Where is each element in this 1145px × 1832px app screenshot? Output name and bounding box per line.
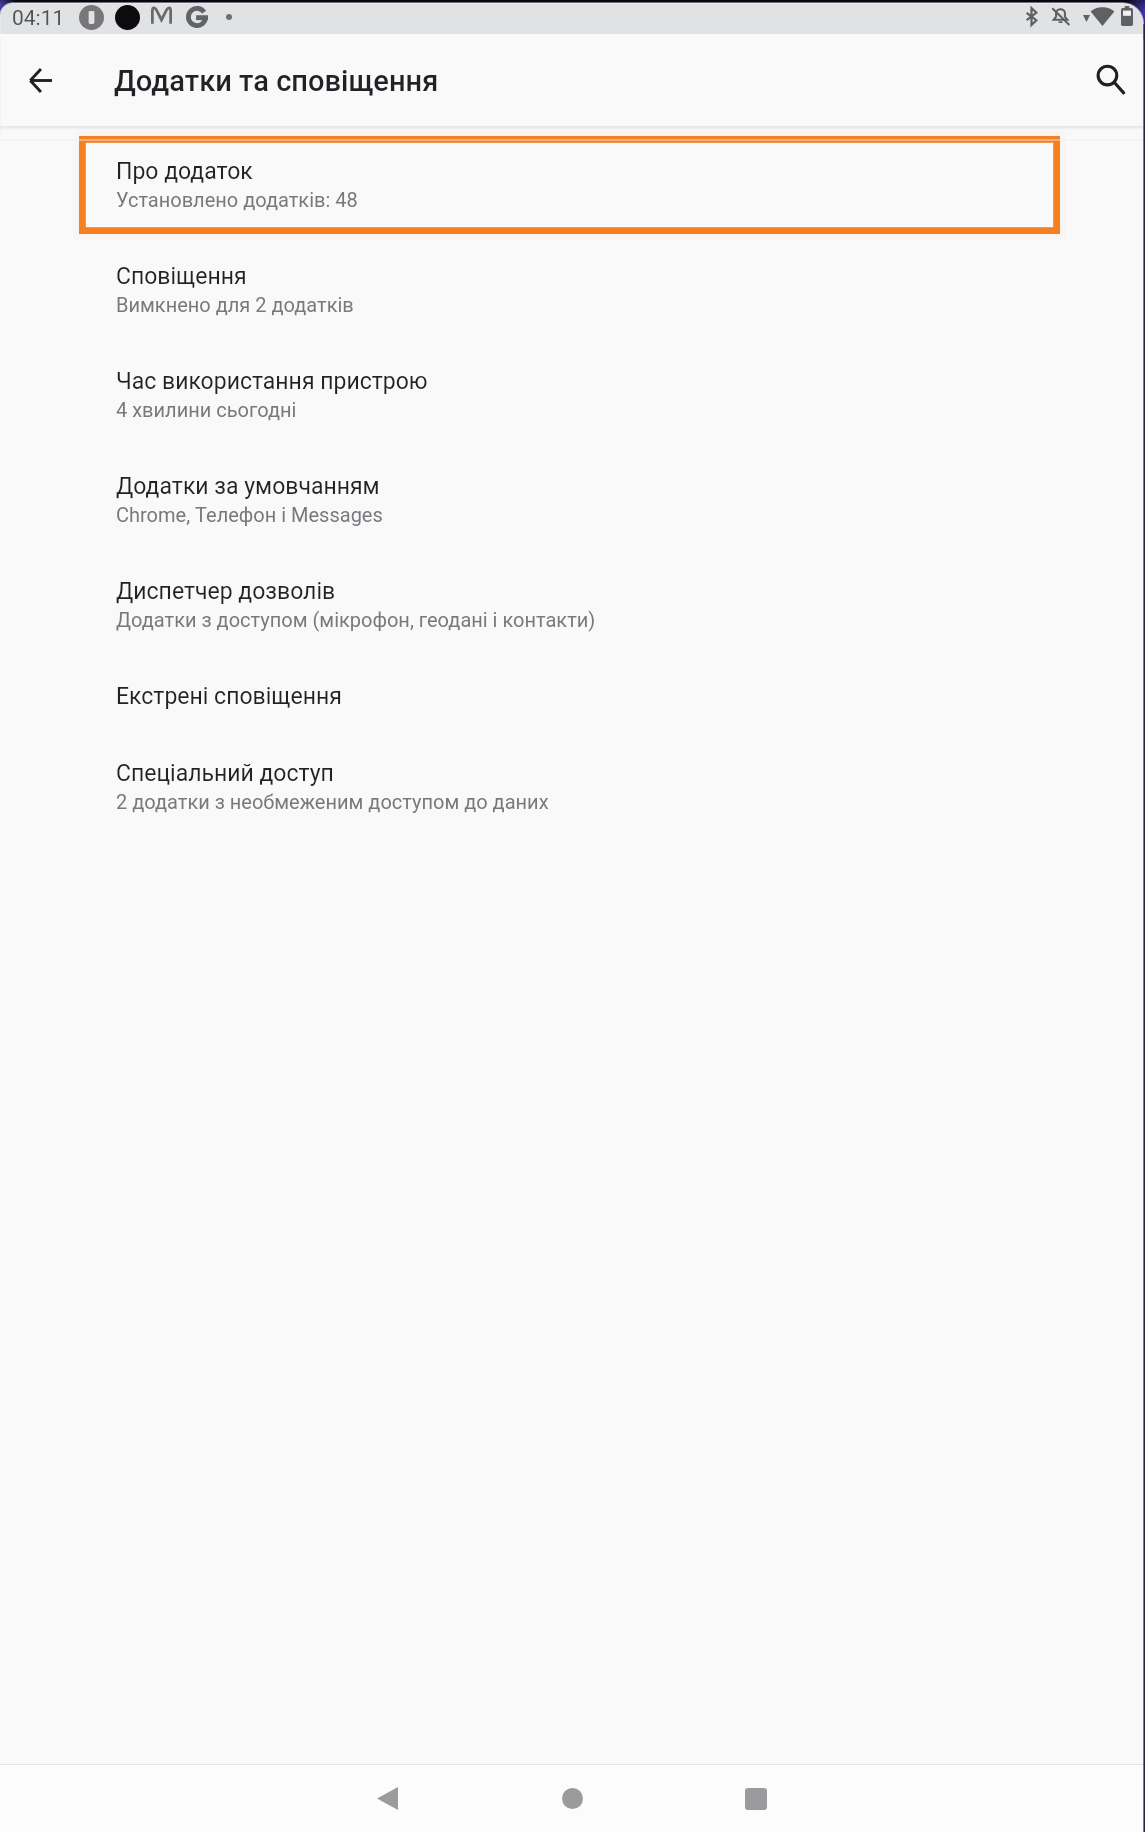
staticText: 2 додатки з необмеженим доступом до дани… [116, 790, 549, 813]
staticText: Про додаток [116, 158, 253, 185]
staticText: Диспетчер дозволів [116, 578, 336, 605]
staticText: Час використання пристрою [116, 368, 428, 395]
staticText: Установлено додатків: 48 [116, 188, 358, 211]
button[interactable]: Back [0, 34, 80, 126]
staticText: Екстрені сповіщення [116, 683, 342, 710]
staticText: 4 хвилини сьогодні [116, 398, 297, 421]
button[interactable]: Сповіщення [0, 239, 1145, 344]
staticText: Додатки з доступом (мікрофон, геодані і … [116, 608, 596, 631]
staticText: Додатки та сповіщення [114, 64, 439, 98]
button[interactable]: Диспетчер дозволів [0, 554, 1145, 659]
button[interactable]: Час використання пристрою [0, 344, 1145, 449]
button[interactable]: Search [1065, 34, 1145, 126]
button[interactable]: Додатки за умовчанням [0, 449, 1145, 554]
button[interactable]: Recent apps [678, 1765, 833, 1832]
staticText: Сповіщення [116, 263, 247, 290]
button[interactable]: Back [310, 1765, 465, 1832]
staticText: Chrome, Телефон і Messages [116, 503, 383, 526]
button[interactable]: Спеціальний доступ [0, 736, 1145, 841]
staticText: Вимкнено для 2 додатків [116, 293, 354, 316]
button[interactable]: Home [495, 1765, 650, 1832]
button[interactable]: Екстрені сповіщення [0, 659, 1145, 736]
button[interactable]: Про додаток [0, 134, 1145, 239]
staticText: Спеціальний доступ [116, 760, 334, 787]
staticText: 04:11 [12, 6, 65, 31]
staticText: Додатки за умовчанням [116, 473, 380, 500]
